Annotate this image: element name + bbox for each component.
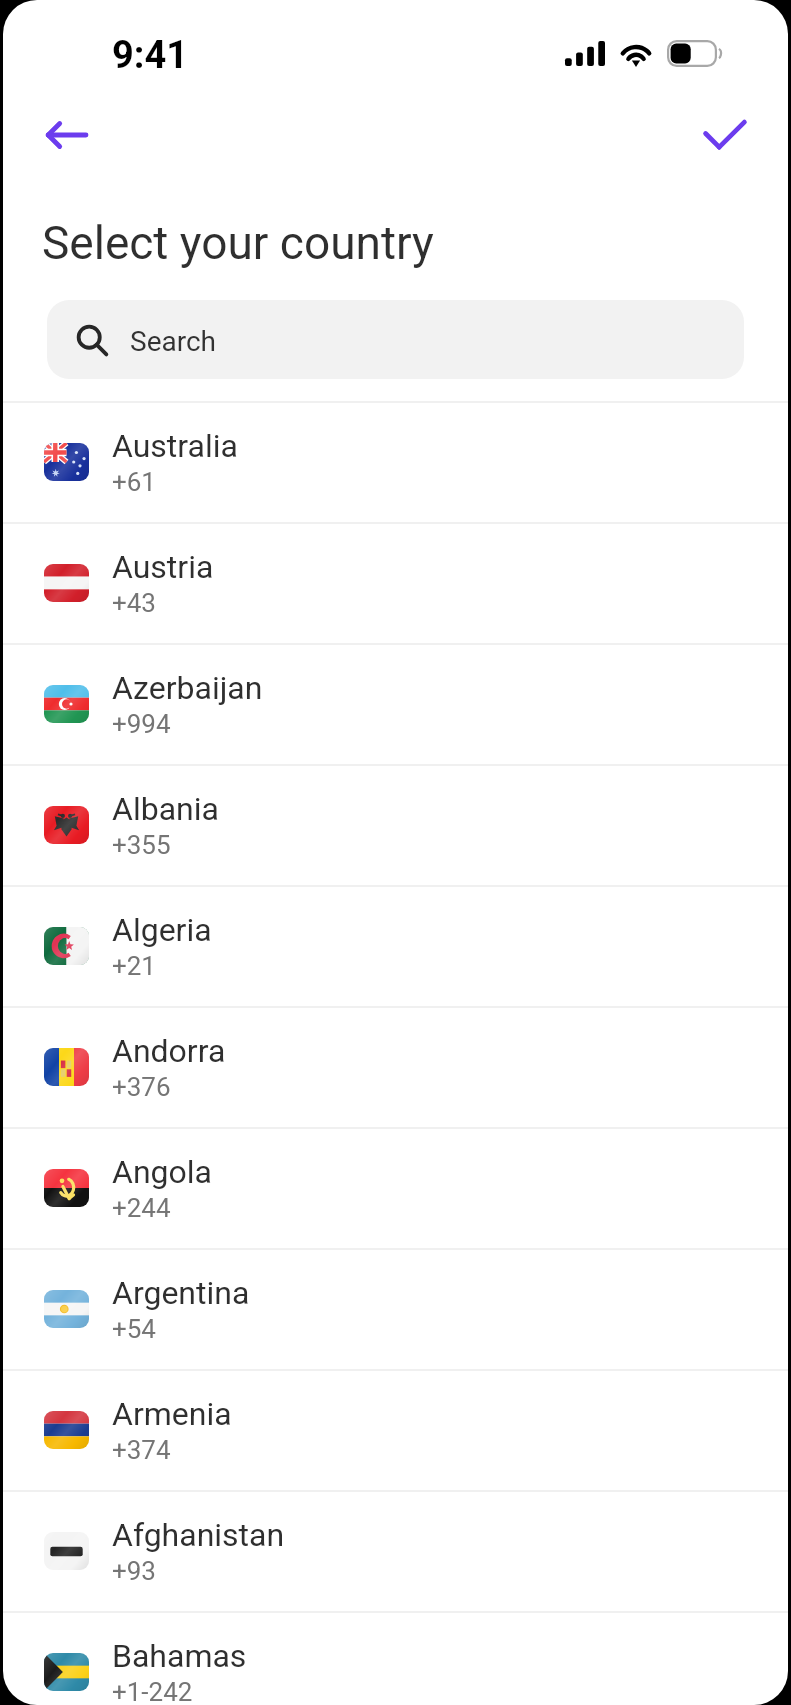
staticText: Austria — [112, 548, 214, 586]
staticText: 9:41 — [112, 33, 189, 78]
staticText: +43 — [112, 588, 156, 618]
staticText: +61 — [112, 467, 156, 497]
button[interactable]: Angola — [3, 1129, 788, 1248]
staticText: Andorra — [112, 1032, 226, 1070]
staticText: Afghanistan — [112, 1516, 285, 1554]
staticText: +376 — [112, 1072, 171, 1102]
button[interactable]: Search — [47, 300, 744, 379]
staticText: +1-242 — [112, 1677, 193, 1705]
staticText: Azerbaijan — [112, 669, 263, 707]
button[interactable]: Bahamas — [3, 1613, 788, 1705]
staticText: Algeria — [112, 911, 212, 949]
staticText: +93 — [112, 1556, 156, 1586]
staticText: +54 — [112, 1314, 156, 1344]
button[interactable]: Azerbaijan — [3, 645, 788, 764]
staticText: +355 — [112, 830, 171, 860]
button[interactable]: Confirm — [704, 101, 772, 169]
button[interactable]: Andorra — [3, 1008, 788, 1127]
staticText: Australia — [112, 427, 238, 465]
staticText: Angola — [112, 1153, 212, 1191]
staticText: +374 — [112, 1435, 171, 1465]
staticText: Argentina — [112, 1274, 250, 1312]
staticText: +21 — [112, 951, 156, 981]
staticText: Armenia — [112, 1395, 232, 1433]
button[interactable]: Algeria — [3, 887, 788, 1006]
button[interactable]: Australia — [3, 403, 788, 522]
staticText: Select your country — [42, 216, 434, 270]
staticText: +244 — [112, 1193, 171, 1223]
button[interactable]: Albania — [3, 766, 788, 885]
staticText: Search — [130, 325, 217, 358]
button[interactable]: Argentina — [3, 1250, 788, 1369]
staticText: Bahamas — [112, 1637, 247, 1675]
button[interactable]: Afghanistan — [3, 1492, 788, 1611]
button[interactable]: Austria — [3, 524, 788, 643]
button[interactable]: Armenia — [3, 1371, 788, 1490]
staticText: +994 — [112, 709, 171, 739]
button[interactable]: Back — [45, 101, 113, 169]
staticText: Albania — [112, 790, 219, 828]
